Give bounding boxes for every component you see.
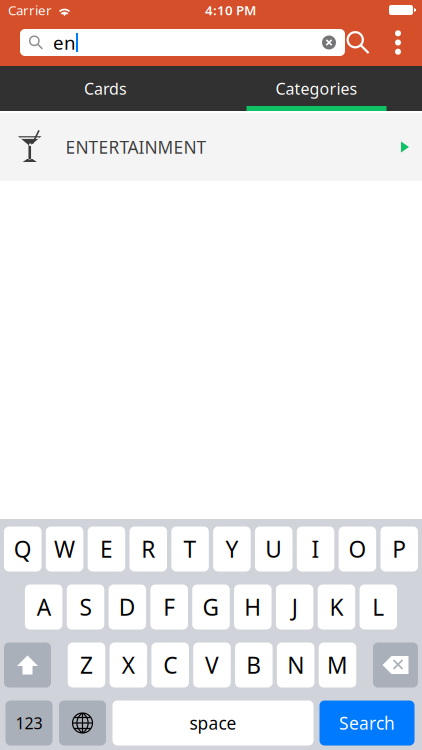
staticText: L bbox=[372, 592, 384, 622]
staticText: 123 bbox=[15, 712, 42, 734]
button[interactable]: H bbox=[234, 584, 272, 629]
button[interactable]: W bbox=[46, 526, 83, 571]
button[interactable]: V bbox=[193, 642, 231, 687]
button[interactable]: Clear text bbox=[322, 35, 336, 49]
staticText: I bbox=[312, 534, 320, 564]
button[interactable]: L bbox=[360, 584, 397, 629]
staticText: R bbox=[141, 534, 155, 564]
staticText: ENTERTAINMENT bbox=[65, 135, 206, 158]
staticText: Search bbox=[339, 711, 395, 734]
staticText: E bbox=[100, 534, 113, 564]
staticText: G bbox=[202, 592, 219, 622]
button[interactable]: Next keyboard bbox=[59, 700, 106, 745]
staticText: P bbox=[392, 534, 406, 564]
staticText: Carrier bbox=[8, 1, 52, 19]
staticText: U bbox=[265, 534, 282, 564]
button[interactable]: Cards bbox=[0, 66, 211, 111]
button[interactable]: 123 bbox=[5, 700, 52, 745]
staticText: en bbox=[53, 30, 76, 55]
button[interactable]: K bbox=[318, 584, 355, 629]
button[interactable]: M bbox=[319, 642, 356, 687]
button[interactable]: More options bbox=[385, 27, 411, 57]
button[interactable]: F bbox=[150, 584, 188, 629]
staticText: B bbox=[246, 650, 261, 680]
button[interactable]: S bbox=[67, 584, 104, 629]
staticText: Cards bbox=[84, 78, 127, 99]
staticText: H bbox=[244, 592, 261, 622]
button[interactable]: E bbox=[88, 526, 125, 571]
staticText: T bbox=[184, 534, 197, 564]
button[interactable]: X bbox=[110, 642, 147, 687]
button[interactable]: D bbox=[109, 584, 146, 629]
staticText: F bbox=[163, 592, 175, 622]
button[interactable]: Q bbox=[4, 526, 41, 571]
staticText: Categories bbox=[275, 78, 357, 99]
staticText: O bbox=[348, 534, 366, 564]
button[interactable]: Search bbox=[345, 27, 371, 57]
staticText: S bbox=[79, 592, 91, 622]
staticText: Y bbox=[225, 534, 238, 564]
button[interactable]: U bbox=[255, 526, 292, 571]
staticText: V bbox=[205, 650, 219, 680]
staticText: Q bbox=[14, 534, 32, 564]
button[interactable]: R bbox=[129, 526, 167, 571]
button[interactable]: Shift bbox=[4, 642, 51, 687]
staticText: space bbox=[189, 711, 236, 734]
button[interactable]: Y bbox=[213, 526, 251, 571]
button[interactable]: Z bbox=[68, 642, 105, 687]
staticText: X bbox=[122, 650, 135, 680]
button[interactable]: Categories bbox=[211, 66, 422, 111]
button[interactable]: A bbox=[25, 584, 62, 629]
button[interactable]: Delete bbox=[373, 642, 418, 687]
button[interactable]: space bbox=[112, 700, 313, 745]
button[interactable]: T bbox=[171, 526, 209, 571]
staticText: M bbox=[327, 650, 348, 680]
button[interactable]: O bbox=[339, 526, 376, 571]
staticText: C bbox=[163, 650, 177, 680]
staticText: W bbox=[54, 534, 75, 564]
staticText: A bbox=[37, 592, 51, 622]
button[interactable]: J bbox=[276, 584, 313, 629]
button[interactable]: ENTERTAINMENT bbox=[0, 113, 422, 181]
staticText: J bbox=[292, 592, 298, 622]
button[interactable]: B bbox=[235, 642, 273, 687]
button[interactable]: I bbox=[297, 526, 334, 571]
staticText: N bbox=[287, 650, 304, 680]
button[interactable]: N bbox=[277, 642, 314, 687]
staticText: Z bbox=[80, 650, 93, 680]
staticText: D bbox=[119, 592, 136, 622]
button[interactable]: Search bbox=[319, 700, 414, 745]
button[interactable]: G bbox=[192, 584, 230, 629]
button[interactable]: C bbox=[151, 642, 189, 687]
staticText: K bbox=[329, 592, 343, 622]
staticText: 4:10 PM bbox=[205, 1, 256, 19]
button[interactable]: P bbox=[380, 526, 418, 571]
